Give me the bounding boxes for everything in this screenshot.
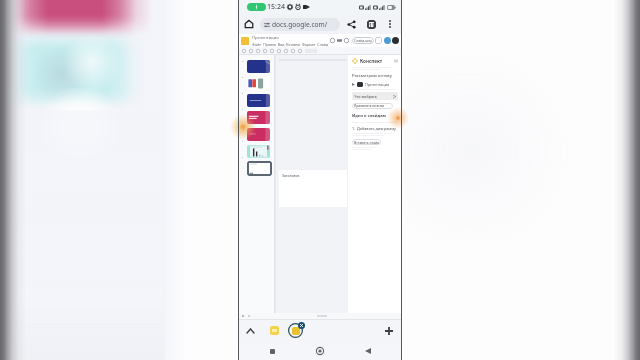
button[interactable]: Profile — [392, 37, 399, 44]
button[interactable]: docs.google.com/pres — [260, 18, 340, 31]
button[interactable]: Home — [313, 344, 327, 358]
button[interactable]: Slideshow options — [375, 37, 382, 44]
button[interactable]: Expand toolbar — [244, 324, 257, 337]
staticText: Заголовок — [282, 173, 300, 178]
button[interactable] — [247, 111, 270, 124]
staticText: Вставить слайд — [354, 140, 380, 144]
staticText: Конспект — [360, 58, 383, 64]
staticText: Рассмотрим основу — [352, 73, 392, 79]
button[interactable]: Slides tab — [270, 326, 279, 335]
button[interactable]: Слайд-шоу — [352, 37, 374, 44]
staticText: Презентация — [252, 35, 279, 41]
staticText: 1. — [352, 126, 356, 131]
button[interactable] — [247, 128, 270, 141]
button[interactable]: Share — [344, 17, 358, 31]
button[interactable]: Account — [384, 37, 391, 44]
button[interactable]: New tab — [382, 324, 396, 338]
button[interactable]: Применить ко всем слайдам — [352, 103, 393, 109]
staticText: docs.google.com/pres — [272, 20, 338, 29]
button[interactable]: Back — [361, 344, 375, 358]
button[interactable]: Active tab — [287, 322, 304, 339]
staticText: 15:24 — [267, 2, 285, 12]
staticText: Идеи к слайдам — [352, 113, 387, 119]
button[interactable] — [247, 77, 270, 90]
staticText: 11 — [369, 22, 375, 28]
staticText: Что выбрать — [354, 94, 377, 99]
button[interactable] — [247, 161, 272, 176]
staticText: Добавить диаграмму или график — [357, 126, 398, 131]
button[interactable]: More options — [383, 17, 397, 31]
staticText: Применить ко всем слайдам — [354, 104, 393, 108]
staticText: Файл Правка Вид Вставка Формат Слайд Объ… — [252, 42, 330, 47]
button[interactable] — [247, 145, 270, 158]
button[interactable] — [247, 60, 270, 73]
button[interactable]: Home — [242, 17, 256, 31]
button[interactable]: Вставить слайд — [352, 139, 381, 145]
staticText: Слайд-шоу — [354, 38, 372, 43]
staticText: Презентация — [365, 82, 390, 87]
button[interactable]: Recents — [265, 344, 279, 358]
button[interactable] — [247, 94, 270, 107]
button[interactable]: Tabs — [364, 17, 378, 31]
button[interactable]: Что выбрать — [352, 92, 398, 100]
